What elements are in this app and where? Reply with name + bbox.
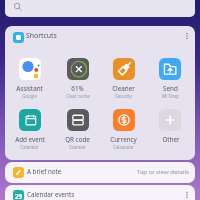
staticText: Calendar events [27, 190, 75, 199]
button[interactable]: More options [179, 187, 195, 200]
staticText: Other [162, 135, 180, 144]
staticText: Scanner [69, 144, 86, 150]
staticText: Assistant [16, 84, 43, 93]
staticText: Google [22, 93, 37, 99]
button[interactable]: A brief note [5, 162, 195, 183]
staticText: Tap to view details [137, 168, 189, 176]
staticText: Calculator [113, 144, 134, 150]
button[interactable] [19, 109, 41, 131]
button[interactable]: More options [179, 28, 195, 44]
staticText: Send [163, 84, 178, 93]
button[interactable] [113, 109, 135, 131]
staticText: 29 [15, 192, 23, 200]
staticText: Cleaner [112, 84, 135, 93]
button[interactable]: Search [5, 0, 195, 17]
button[interactable] [113, 58, 135, 80]
staticText: 61% [71, 84, 84, 93]
staticText: QR code [65, 135, 90, 144]
button[interactable] [67, 58, 89, 80]
button[interactable] [159, 109, 181, 131]
staticText: Add event [15, 135, 45, 144]
button[interactable] [159, 58, 181, 80]
staticText: Currency [110, 135, 137, 144]
staticText: Shortcuts [26, 31, 57, 40]
staticText: Calendar [20, 144, 39, 150]
staticText: Mi Drop [162, 93, 179, 99]
staticText: Security [115, 93, 132, 99]
button[interactable] [19, 58, 41, 80]
staticText: A brief note [27, 167, 62, 176]
staticText: Clear cache [66, 93, 90, 99]
button[interactable] [67, 109, 89, 131]
button[interactable]: 29 [5, 185, 195, 200]
